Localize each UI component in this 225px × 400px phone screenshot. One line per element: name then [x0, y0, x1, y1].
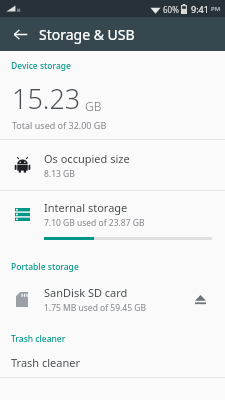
staticText: GB [85, 98, 102, 114]
staticText: Os occupied size [44, 151, 130, 166]
button[interactable]: Trash cleaner [0, 347, 225, 377]
staticText: Internal storage [44, 200, 128, 215]
staticText: Trash cleaner [11, 355, 81, 370]
staticText: 8.13 GB [44, 168, 75, 180]
staticText: Storage & USB [39, 25, 135, 44]
button[interactable]: Os occupied size [0, 140, 225, 190]
staticText: 9:41 [191, 3, 209, 15]
staticText: Total used of 32.00 GB [12, 119, 107, 131]
staticText: Portable storage [11, 261, 79, 273]
staticText: Trash cleaner [11, 333, 66, 345]
staticText: 60% [163, 4, 179, 15]
staticText: SanDisk SD card [44, 285, 128, 300]
staticText: 15.23 [12, 80, 81, 117]
button[interactable]: Eject SD card [185, 284, 215, 314]
button[interactable]: SanDisk SD card [0, 275, 225, 323]
button[interactable]: Internal storage [0, 191, 225, 250]
staticText: PM [211, 5, 221, 13]
button[interactable]: Back [6, 20, 34, 48]
staticText: 1.75 MB used of 59.45 GB [44, 302, 147, 314]
staticText: Device storage [11, 60, 71, 72]
staticText: 7.10 GB used of 23.87 GB [44, 217, 145, 229]
